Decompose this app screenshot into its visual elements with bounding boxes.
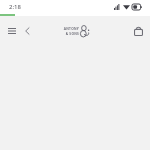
button[interactable]: Home [63,25,90,38]
button[interactable]: Shopping bag [130,23,146,39]
button[interactable]: Menu [4,23,20,39]
staticText: 2:18 [9,3,21,11]
button[interactable]: Back [19,23,35,39]
staticText: ANTONY [63,27,79,31]
staticText: & SONS [65,32,79,36]
